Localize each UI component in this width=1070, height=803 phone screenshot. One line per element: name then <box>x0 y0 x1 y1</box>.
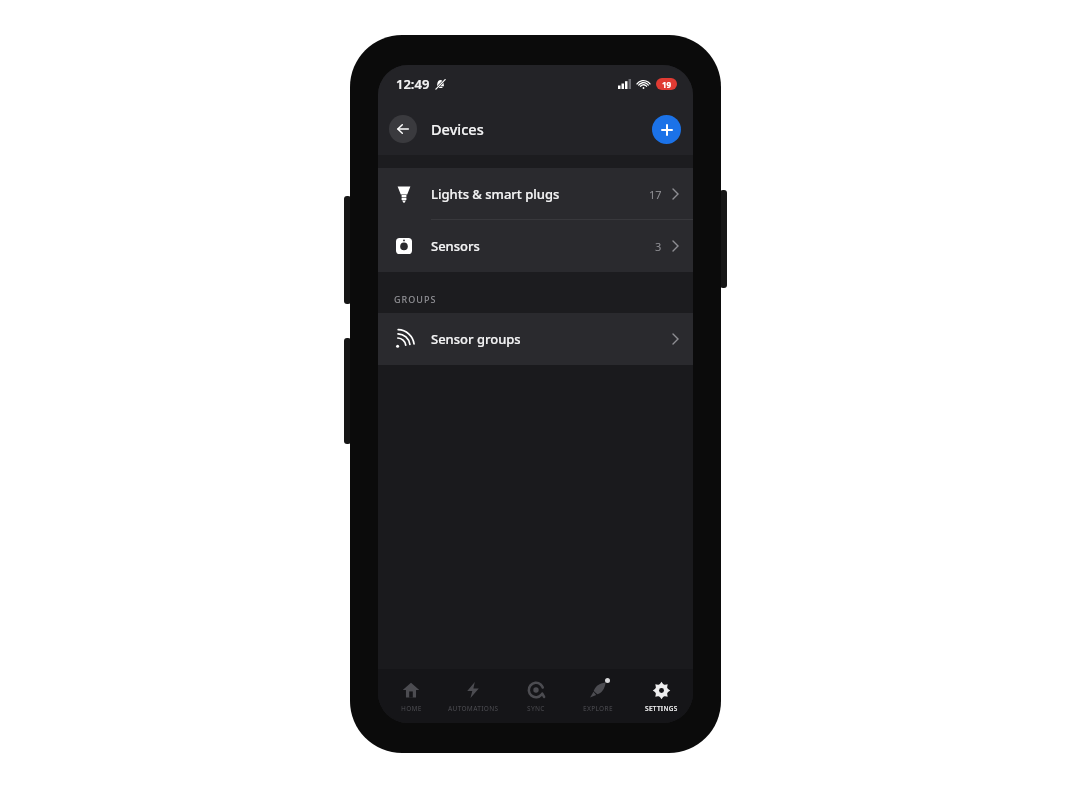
staticText: SYNC <box>527 704 545 713</box>
button[interactable]: AUTOMATIONS <box>443 679 503 713</box>
staticText: 19 <box>662 79 672 90</box>
button[interactable]: Sensors <box>378 220 693 272</box>
staticText: AUTOMATIONS <box>448 704 499 713</box>
staticText: 12:49 <box>396 75 430 93</box>
staticText: Lights & smart plugs <box>431 185 560 203</box>
staticText: GROUPS <box>394 293 437 305</box>
button[interactable]: SETTINGS <box>631 679 691 713</box>
staticText: EXPLORE <box>583 704 613 713</box>
staticText: Sensors <box>431 237 480 255</box>
staticText: Devices <box>431 119 484 139</box>
staticText: SETTINGS <box>645 704 678 713</box>
button[interactable]: Sensor groups <box>378 313 693 365</box>
button[interactable]: Lights & smart plugs <box>378 168 693 220</box>
staticText: Sensor groups <box>431 330 521 348</box>
button[interactable]: SYNC <box>506 679 566 713</box>
button[interactable]: Back <box>389 115 417 143</box>
staticText: 3 <box>655 239 662 254</box>
staticText: HOME <box>401 704 422 713</box>
button[interactable]: EXPLORE <box>568 679 628 713</box>
staticText: 17 <box>649 187 662 202</box>
button[interactable]: HOME <box>381 679 441 713</box>
button[interactable]: Add device <box>652 115 681 144</box>
